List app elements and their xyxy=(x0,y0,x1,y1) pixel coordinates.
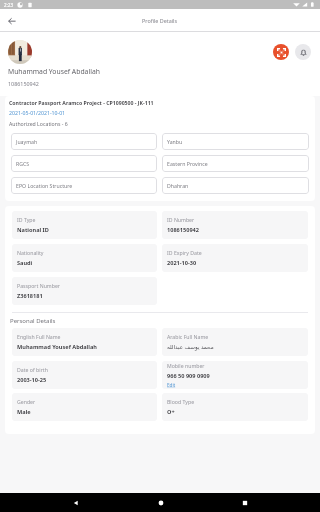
staticText: Male xyxy=(17,408,31,416)
button[interactable]: Mobile number xyxy=(162,361,308,389)
staticText: Mobile number xyxy=(167,362,205,369)
staticText: Nationality xyxy=(17,249,44,256)
button[interactable]: ID Number xyxy=(162,211,308,239)
button[interactable]: Recent apps xyxy=(235,493,254,512)
button[interactable]: Edit xyxy=(167,382,176,388)
button[interactable]: Notifications xyxy=(295,44,311,60)
button[interactable]: ID Expiry Date xyxy=(162,244,308,272)
staticText: Blood Type xyxy=(167,398,195,405)
staticText: ID Number xyxy=(167,216,195,223)
staticText: Contractor Passport Aramco Project - CP1… xyxy=(9,99,154,106)
staticText: Saudi xyxy=(17,259,33,267)
button[interactable]: Blood Type xyxy=(162,393,308,421)
staticText: O+ xyxy=(167,408,175,416)
button[interactable]: Passport Number xyxy=(12,277,157,305)
button[interactable]: EPO Location Structure xyxy=(11,177,157,194)
staticText: RGCS xyxy=(16,160,30,167)
staticText: 2:23 xyxy=(4,2,14,8)
button[interactable]: Dhahran xyxy=(162,177,309,194)
staticText: ID Expiry Date xyxy=(167,249,202,256)
staticText: Yanbu xyxy=(167,138,183,145)
staticText: Z3618181 xyxy=(17,292,43,300)
button[interactable]: Arabic Full Name xyxy=(162,328,308,356)
staticText: Passport Number xyxy=(17,282,60,289)
staticText: Gender xyxy=(17,398,36,405)
staticText: Juaymah xyxy=(16,138,38,145)
staticText: Dhahran xyxy=(167,182,189,189)
button[interactable]: Back xyxy=(3,12,20,29)
button[interactable]: Date of birth xyxy=(12,361,157,389)
button[interactable]: Juaymah xyxy=(11,133,157,150)
staticText: Profile Details xyxy=(142,17,178,24)
staticText: National ID xyxy=(17,226,49,234)
button[interactable]: Yanbu xyxy=(162,133,309,150)
staticText: 2021-10-30 xyxy=(167,259,197,267)
staticText: 2003-10-25 xyxy=(17,376,47,384)
button[interactable]: Show QR code xyxy=(273,44,289,60)
button[interactable]: RGCS xyxy=(11,155,157,172)
button[interactable]: Home xyxy=(151,493,170,512)
staticText: 1086150942 xyxy=(8,80,39,87)
button[interactable]: Gender xyxy=(12,393,157,421)
staticText: Eastern Province xyxy=(167,160,208,167)
button[interactable]: English Full Name xyxy=(12,328,157,356)
staticText: Arabic Full Name xyxy=(167,333,209,340)
staticText: Date of birth xyxy=(17,366,48,373)
staticText: 1086150942 xyxy=(167,226,199,234)
button[interactable]: Eastern Province xyxy=(162,155,309,172)
staticText: Muhammad Yousef Abdallah xyxy=(17,343,97,351)
staticText: Authorized Locations - 6 xyxy=(9,120,68,127)
button[interactable]: ID Type xyxy=(12,211,157,239)
staticText: ID Type xyxy=(17,216,36,223)
staticText: محمد يوسف عبدالله xyxy=(167,343,214,351)
staticText: Muhammad Yousef Abdallah xyxy=(8,67,100,76)
staticText: 2021-05-01/2021-10-01 xyxy=(9,109,66,116)
staticText: 966 50 909 0909 xyxy=(167,372,210,380)
button[interactable]: Nationality xyxy=(12,244,157,272)
staticText: English Full Name xyxy=(17,333,61,340)
staticText: EPO Location Structure xyxy=(16,182,73,189)
button[interactable]: Back xyxy=(66,493,85,512)
staticText: Personal Details xyxy=(10,317,56,325)
